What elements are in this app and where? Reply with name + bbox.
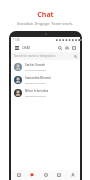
- button[interactable]: Notifications: [63, 44, 70, 51]
- button[interactable]: Nihar Srikrisnha: [11, 86, 80, 99]
- button[interactable]: Chat: [26, 170, 38, 180]
- staticText: Chat: [37, 10, 54, 20]
- button[interactable]: Groups: [53, 170, 65, 180]
- button[interactable]: Search for name or designation: [11, 52, 80, 60]
- staticText: Samantha Bharati: [25, 76, 51, 80]
- staticText: 11:05: [13, 38, 20, 42]
- button[interactable]: Search: [56, 44, 63, 51]
- button[interactable]: More options: [70, 44, 77, 51]
- button[interactable]: Samantha Bharati: [11, 73, 80, 86]
- button[interactable]: Profile: [67, 170, 79, 180]
- staticText: Sachin Suresh: [25, 63, 45, 67]
- staticText: CHAT: [22, 46, 31, 50]
- button[interactable]: Sachin Suresh: [11, 60, 80, 73]
- staticText: Android Developer: [25, 68, 47, 71]
- button[interactable]: Menu: [14, 45, 20, 51]
- staticText: Socialize. Engage. Team work.: [17, 21, 73, 26]
- staticText: Managing Director: [25, 81, 47, 84]
- button[interactable]: Calls: [40, 170, 52, 180]
- staticText: Nihar Srikrisnha: [25, 89, 49, 93]
- staticText: Managing Director: [25, 94, 47, 97]
- staticText: Search for name or designation: [14, 54, 56, 58]
- button[interactable]: Feed: [13, 170, 25, 180]
